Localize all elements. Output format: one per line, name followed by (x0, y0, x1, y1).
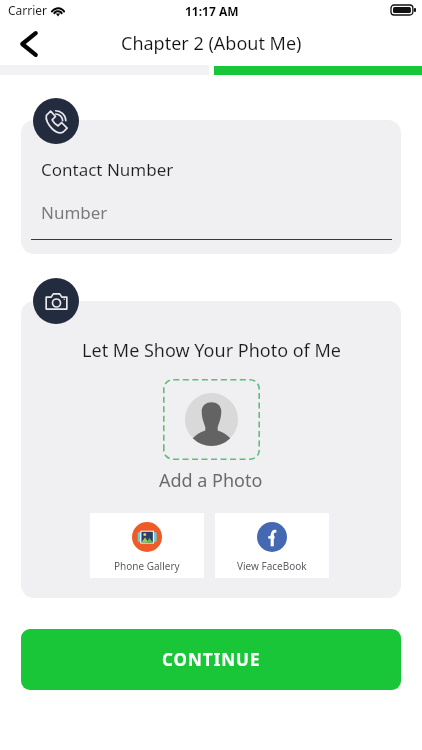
button[interactable]: CONTINUE (21, 629, 401, 690)
staticText: Chapter 2 (About Me) (121, 31, 302, 56)
staticText: Number (41, 201, 108, 224)
button[interactable]: Take photo (33, 278, 79, 324)
staticText: View FaceBook (237, 559, 307, 573)
button[interactable]: Back (13, 28, 45, 60)
button[interactable]: Phone (33, 98, 79, 144)
staticText: Contact Number (41, 158, 174, 181)
button[interactable]: Add a photo (163, 379, 260, 460)
button[interactable]: View FaceBook (215, 513, 329, 578)
staticText: Phone Gallery (114, 559, 180, 573)
staticText: Carrier (8, 2, 48, 18)
staticText: 11:17 AM (185, 3, 239, 19)
staticText: Add a Photo (159, 468, 263, 493)
staticText: CONTINUE (162, 648, 261, 671)
button[interactable]: Phone Gallery (90, 513, 204, 578)
staticText: Let Me Show Your Photo of Me (82, 338, 341, 363)
